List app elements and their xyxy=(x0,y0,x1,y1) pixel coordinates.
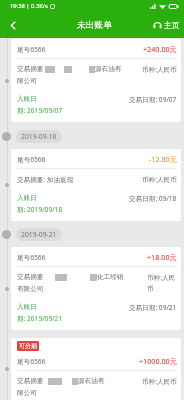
staticText: +18.00元 xyxy=(147,252,177,262)
staticText: 有限公司 xyxy=(17,285,44,293)
staticText: +240.00元 xyxy=(143,44,177,54)
button[interactable]: 2019-09-18 xyxy=(16,130,62,143)
staticText: 交易摘要: 加油返现 xyxy=(17,175,74,184)
staticText: 交易摘要 xyxy=(17,377,44,385)
staticText: 期: 2019/09/07 xyxy=(17,106,63,115)
staticText: 币种:人民币 xyxy=(142,65,177,74)
staticText: 币种:人民币 xyxy=(142,377,177,386)
staticText: -12.80元 xyxy=(149,154,177,164)
staticText: 尾号6566 xyxy=(17,357,46,366)
button[interactable]: 尾号6566 xyxy=(11,247,181,330)
staticText: 交易日期: 09/18 xyxy=(129,194,177,203)
staticText: 币种:人民币 xyxy=(147,273,177,293)
staticText: 入账日 xyxy=(17,303,37,311)
staticText: 未出账单 xyxy=(77,20,113,31)
button[interactable]: 可分期 xyxy=(11,338,181,400)
staticText: 交易摘要 xyxy=(17,273,44,281)
staticText: 交易日期: 09/21 xyxy=(129,303,177,312)
staticText: 可分期 xyxy=(19,342,37,350)
staticText: 尾号6566 xyxy=(17,45,46,54)
staticText: 19:38 | 0.3K/s xyxy=(10,2,48,10)
staticText: 化工经销 xyxy=(97,273,124,281)
staticText: 主页 xyxy=(164,20,180,30)
staticText: 2019-09-21 xyxy=(21,230,57,239)
button[interactable]: 返回 xyxy=(0,12,26,38)
button[interactable]: 主页 xyxy=(153,20,180,30)
staticText: 尾号6566 xyxy=(17,155,46,164)
staticText: 源石油有 xyxy=(78,377,105,385)
button[interactable]: 尾号6566 xyxy=(11,39,181,122)
staticText: 入账日 xyxy=(17,194,37,202)
button[interactable]: 2019-09-21 xyxy=(16,228,62,241)
staticText: 限公司 xyxy=(17,389,37,397)
staticText: 限公司 xyxy=(17,77,37,85)
staticText: 入账日 xyxy=(17,95,37,103)
button[interactable]: 尾号6566 xyxy=(11,149,181,221)
staticText: 源石油有 xyxy=(95,65,122,73)
staticText: 交易摘要 xyxy=(17,65,44,73)
staticText: +1000.00元 xyxy=(139,356,177,366)
staticText: 2019-09-18 xyxy=(21,132,57,141)
staticText: 期: 2019/09/18 xyxy=(17,205,63,214)
staticText: 期: 2019/09/21 xyxy=(17,314,63,323)
staticText: 交易日期: 09/07 xyxy=(129,95,177,104)
staticText: 币种:人民币 xyxy=(142,175,177,184)
staticText: 尾号6566 xyxy=(17,253,46,262)
